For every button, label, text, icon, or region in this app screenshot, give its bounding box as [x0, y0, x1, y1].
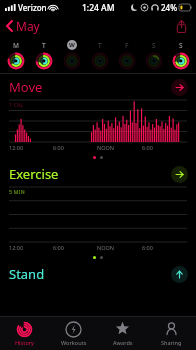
staticText: 12:00: [9, 244, 24, 251]
button[interactable]: Stand: [0, 261, 196, 287]
button[interactable]: S: [140, 37, 167, 73]
staticText: Exercise: [9, 165, 59, 183]
staticText: T: [42, 41, 46, 50]
button[interactable]: May: [4, 16, 42, 36]
staticText: T: [98, 41, 102, 50]
staticText: 12:00: [9, 144, 24, 151]
staticText: F: [125, 41, 129, 50]
staticText: 24%: [161, 2, 177, 13]
staticText: Stand: [9, 265, 45, 283]
staticText: History: [15, 339, 34, 346]
button[interactable]: T: [86, 37, 113, 73]
staticText: 6:00: [142, 244, 153, 251]
staticText: 6:00: [53, 144, 64, 151]
button[interactable]: M: [2, 37, 30, 73]
button[interactable]: Workouts: [49, 317, 98, 350]
staticText: May: [16, 18, 40, 34]
staticText: W: [69, 41, 75, 49]
staticText: Sharing: [161, 339, 182, 346]
button[interactable]: Exercise: [0, 161, 196, 187]
staticText: 1:24 AM: [82, 2, 115, 14]
staticText: 6:00: [142, 144, 153, 151]
other: Move details: [171, 79, 188, 96]
button[interactable]: History: [0, 317, 49, 350]
staticText: 6:00: [53, 244, 64, 251]
staticText: 1 CAL: [9, 101, 24, 108]
button[interactable]: Sharing: [147, 317, 196, 350]
button[interactable]: F: [113, 37, 140, 73]
staticText: Workouts: [61, 339, 87, 346]
staticText: NOON: [97, 244, 114, 251]
button[interactable]: W: [58, 37, 86, 73]
button[interactable]: Move: [0, 74, 196, 100]
staticText: 5 MIN: [9, 188, 25, 195]
staticText: M: [13, 41, 19, 50]
staticText: Move: [9, 78, 43, 96]
button[interactable]: T: [30, 37, 58, 73]
button[interactable]: S: [167, 37, 194, 73]
button[interactable]: Awards: [98, 317, 147, 350]
staticText: Awards: [113, 339, 133, 346]
staticText: S: [179, 41, 183, 50]
other: Stand details: [171, 266, 188, 283]
staticText: Verizon: [18, 2, 47, 13]
staticText: S: [152, 41, 156, 50]
button[interactable]: Share: [173, 18, 189, 34]
staticText: NOON: [97, 144, 114, 151]
other: Exercise details: [171, 166, 188, 183]
